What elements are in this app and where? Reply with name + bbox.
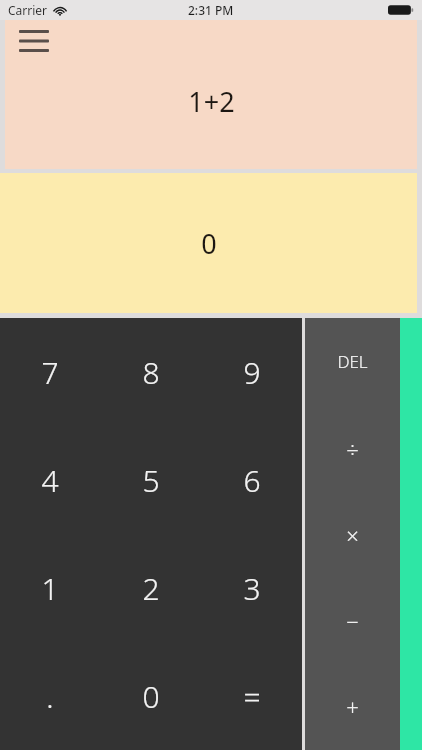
button[interactable]: ÷ (305, 405, 400, 492)
button[interactable]: 4 (0, 426, 100, 534)
button[interactable]: 5 (100, 426, 201, 534)
button[interactable]: 8 (100, 318, 201, 426)
staticText: DEL (337, 350, 368, 373)
button[interactable]: DEL (305, 318, 400, 405)
button[interactable]: 9 (201, 318, 302, 426)
staticText: − (346, 606, 359, 636)
button[interactable]: − (305, 578, 400, 664)
staticText: 9 (243, 352, 261, 393)
staticText: 4 (41, 460, 59, 501)
staticText: 2:31 PM (188, 2, 234, 18)
staticText: 1 (41, 568, 59, 609)
staticText: Carrier (8, 2, 48, 18)
button[interactable]: 1 (0, 534, 100, 642)
staticText: 0 (201, 225, 217, 262)
staticText: + (346, 692, 359, 722)
staticText: . (46, 676, 54, 717)
staticText: 1+2 (188, 83, 235, 120)
staticText: ÷ (346, 434, 359, 464)
button[interactable]: 2 (100, 534, 201, 642)
staticText: 0 (142, 676, 160, 717)
staticText: 5 (142, 460, 160, 501)
staticText: = (243, 676, 261, 717)
button[interactable]: . (0, 642, 100, 750)
button[interactable]: + (305, 664, 400, 750)
staticText: × (346, 520, 359, 550)
button[interactable]: × (305, 492, 400, 578)
button[interactable]: 6 (201, 426, 302, 534)
staticText: 3 (243, 568, 261, 609)
staticText: 7 (41, 352, 59, 393)
staticText: 8 (142, 352, 160, 393)
staticText: 6 (243, 460, 261, 501)
button[interactable]: Menu (15, 26, 53, 56)
button[interactable]: 0 (100, 642, 201, 750)
button[interactable]: = (201, 642, 302, 750)
staticText: 2 (142, 568, 160, 609)
button[interactable]: 3 (201, 534, 302, 642)
button[interactable]: 7 (0, 318, 100, 426)
